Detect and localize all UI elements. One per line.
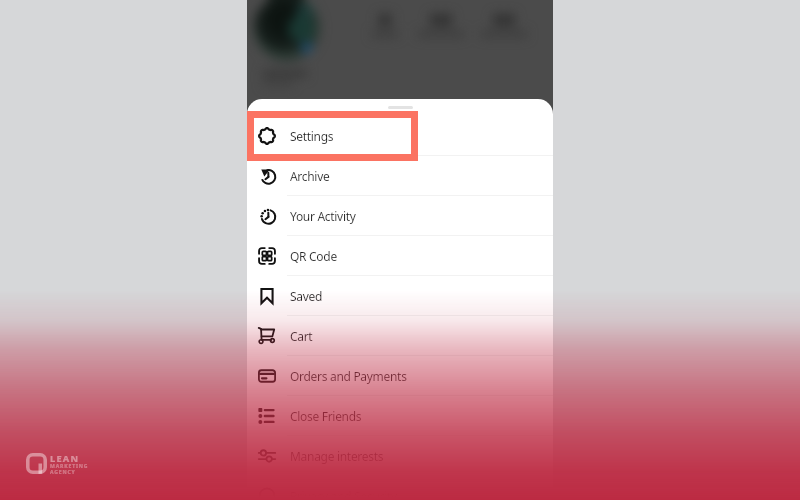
button[interactable]: Manage interests [247,436,553,475]
staticText: Your Activity [290,208,356,224]
button[interactable]: Orders and Payments [247,356,553,395]
staticText: AGENCY [50,469,76,476]
button[interactable]: QR Code [247,236,553,275]
button[interactable]: Archive [247,156,553,195]
button[interactable]: Settings highlight [247,111,418,161]
staticText: Orders and Payments [290,368,407,384]
staticText: Cart [290,328,313,344]
staticText: Manage interests [290,448,384,464]
staticText: Settings [290,128,334,144]
staticText: Close Friends [290,408,362,424]
staticText: Saved [290,288,323,304]
button[interactable]: Settings [247,116,553,155]
button[interactable]: Close Friends [247,396,553,435]
button[interactable]: Your Activity [247,196,553,235]
button[interactable]: Cart [247,316,553,355]
staticText: QR Code [290,248,337,264]
staticText: MARKETING [50,463,89,470]
button[interactable]: Saved [247,276,553,315]
staticText: LEAN [50,452,80,465]
staticText: Archive [290,168,330,184]
